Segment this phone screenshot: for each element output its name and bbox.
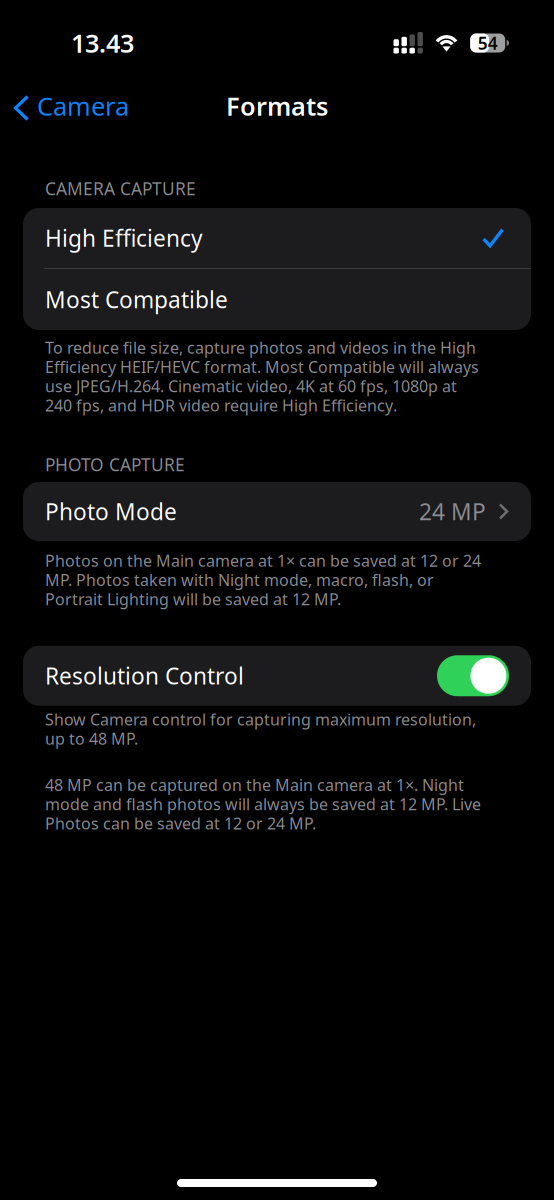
staticText: Most Compatible: [45, 284, 228, 314]
staticText: Formats: [226, 89, 328, 123]
button[interactable]: Most Compatible: [23, 269, 531, 330]
button[interactable]: Photo Mode: [0, 482, 554, 541]
staticText: Photo Mode: [45, 496, 177, 526]
staticText: 24 MP: [419, 496, 486, 526]
staticText: Resolution Control: [45, 661, 244, 691]
staticText: Photos on the Main camera at 1× can be s…: [45, 550, 481, 610]
staticText: PHOTO CAPTURE: [45, 453, 185, 476]
button[interactable]: High Efficiency: [23, 208, 531, 268]
button[interactable]: Resolution Control: [0, 646, 554, 706]
staticText: CAMERA CAPTURE: [45, 177, 196, 200]
staticText: 13.43: [71, 26, 134, 60]
staticText: Camera: [37, 89, 129, 123]
staticText: To reduce file size, capture photos and …: [45, 337, 479, 416]
staticText: High Efficiency: [45, 223, 203, 253]
staticText: 48 MP can be captured on the Main camera…: [45, 774, 481, 834]
staticText: 54: [478, 31, 498, 54]
button[interactable]: Camera: [0, 82, 141, 130]
staticText: Show Camera control for capturing maximu…: [45, 709, 476, 749]
